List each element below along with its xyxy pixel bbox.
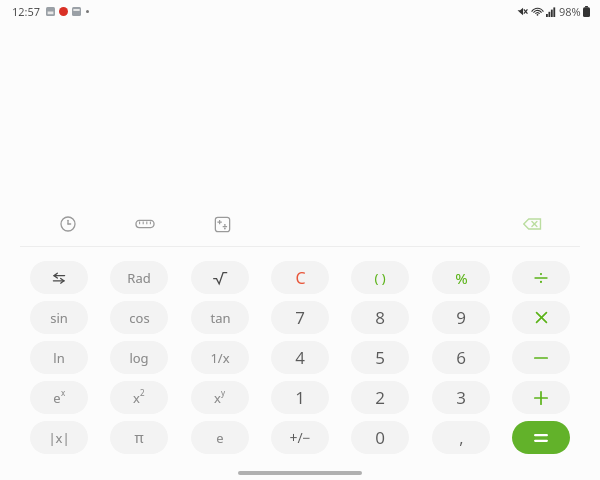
button[interactable]: sin xyxy=(30,301,88,334)
staticText: 6 xyxy=(456,346,466,369)
staticText: 1 xyxy=(295,386,305,409)
button[interactable]: log xyxy=(110,341,168,374)
button[interactable]: cos xyxy=(110,301,168,334)
staticText: ( ) xyxy=(374,269,386,287)
staticText: 98% xyxy=(559,4,581,19)
button[interactable]: % xyxy=(432,261,490,294)
staticText: , xyxy=(459,427,464,449)
button[interactable]: History xyxy=(48,204,88,244)
button[interactable]: , xyxy=(432,421,490,454)
button[interactable]: 4 xyxy=(271,341,329,374)
staticText: 7 xyxy=(295,306,305,329)
button[interactable]: Equals xyxy=(512,421,570,454)
staticText: tan xyxy=(210,309,231,327)
staticText: 8 xyxy=(375,306,385,329)
button[interactable]: 1/x xyxy=(191,341,249,374)
button[interactable]: |x| xyxy=(30,421,88,454)
button[interactable]: 0 xyxy=(351,421,409,454)
staticText: ln xyxy=(53,349,65,367)
staticText: 0 xyxy=(375,426,385,449)
staticText: 5 xyxy=(375,346,385,369)
button[interactable]: ln xyxy=(30,341,88,374)
staticText: 9 xyxy=(456,306,466,329)
button[interactable]: 8 xyxy=(351,301,409,334)
button[interactable]: Unit converter xyxy=(125,204,165,244)
staticText: x xyxy=(214,389,221,407)
staticText: |x| xyxy=(48,429,70,447)
staticText: 4 xyxy=(295,346,305,369)
staticText: y xyxy=(221,387,226,398)
button[interactable]: ( ) xyxy=(351,261,409,294)
button[interactable]: Plus xyxy=(512,381,570,414)
button[interactable]: Swap xyxy=(30,261,88,294)
staticText: 2 xyxy=(375,386,385,409)
button[interactable]: x xyxy=(191,381,249,414)
button[interactable]: e xyxy=(191,421,249,454)
staticText: cos xyxy=(129,309,150,327)
button[interactable]: 7 xyxy=(271,301,329,334)
button[interactable]: Multiply xyxy=(512,301,570,334)
button[interactable]: e xyxy=(30,381,88,414)
staticText: C xyxy=(295,267,306,289)
button[interactable]: Divide xyxy=(512,261,570,294)
button[interactable]: 3 xyxy=(432,381,490,414)
button[interactable]: π xyxy=(110,421,168,454)
button[interactable]: 9 xyxy=(432,301,490,334)
staticText: % xyxy=(455,268,468,288)
staticText: π xyxy=(134,428,144,447)
staticText: Rad xyxy=(127,269,151,287)
staticText: x xyxy=(61,387,66,398)
staticText: log xyxy=(129,349,149,367)
button[interactable]: 1 xyxy=(271,381,329,414)
button[interactable]: 2 xyxy=(351,381,409,414)
staticText: 12:57 xyxy=(12,4,41,19)
button[interactable]: Square root xyxy=(191,261,249,294)
staticText: x xyxy=(133,389,140,407)
button[interactable]: Rad xyxy=(110,261,168,294)
button[interactable]: 6 xyxy=(432,341,490,374)
staticText: e xyxy=(216,429,224,447)
button[interactable]: Calculator mode xyxy=(202,204,242,244)
staticText: +/− xyxy=(289,428,311,447)
button[interactable]: +/− xyxy=(271,421,329,454)
button[interactable]: 5 xyxy=(351,341,409,374)
button[interactable]: Backspace xyxy=(512,204,552,244)
button[interactable]: x xyxy=(110,381,168,414)
button[interactable]: Minus xyxy=(512,341,570,374)
staticText: 2 xyxy=(140,387,145,398)
staticText: sin xyxy=(50,309,68,327)
staticText: 3 xyxy=(456,386,466,409)
staticText: 1/x xyxy=(210,349,230,367)
button[interactable]: tan xyxy=(191,301,249,334)
button[interactable]: C xyxy=(271,261,329,294)
staticText: e xyxy=(53,389,61,407)
